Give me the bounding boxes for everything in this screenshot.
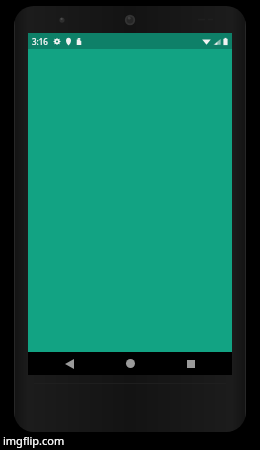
button[interactable]: Back	[49, 352, 89, 375]
button[interactable]: Home	[110, 352, 150, 375]
staticText: imgflip.com	[3, 433, 65, 448]
button[interactable]: Recent apps	[171, 352, 211, 375]
staticText: 3:16	[32, 36, 48, 47]
